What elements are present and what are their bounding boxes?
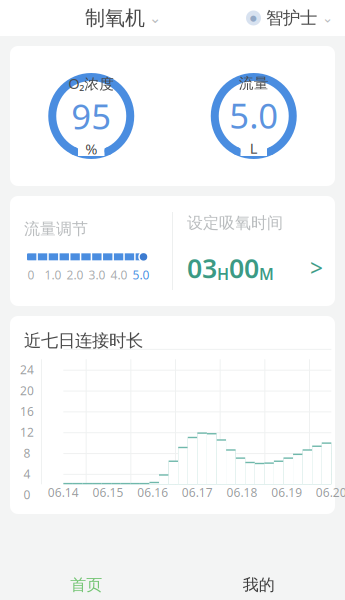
- staticText: 06.14: [48, 484, 79, 500]
- staticText: 0: [23, 487, 30, 503]
- staticText: 4.0: [110, 267, 127, 283]
- staticText: 5.0: [229, 92, 278, 138]
- staticText: 近七日连接时长: [24, 330, 143, 351]
- staticText: H: [217, 263, 229, 284]
- staticText: 06.19: [271, 484, 302, 500]
- button[interactable]: 制氧机: [85, 6, 161, 30]
- staticText: L: [250, 138, 258, 158]
- staticText: M: [259, 263, 274, 284]
- staticText: 首页: [70, 575, 102, 595]
- button[interactable]: 我的: [172, 570, 345, 600]
- staticText: ⌄: [322, 10, 333, 25]
- staticText: 流量: [239, 74, 269, 92]
- staticText: O₂浓度: [68, 73, 114, 93]
- staticText: 06.16: [137, 484, 168, 500]
- button[interactable]: 设定吸氧时间: [173, 199, 335, 303]
- staticText: 我的: [243, 575, 275, 595]
- staticText: 4: [23, 466, 30, 482]
- staticText: 1.0: [44, 267, 61, 283]
- staticText: 24: [20, 362, 34, 378]
- staticText: 06.20: [316, 484, 345, 500]
- staticText: 3.0: [88, 267, 105, 283]
- staticText: 制氧机: [85, 6, 145, 30]
- button[interactable]: ●: [246, 7, 333, 29]
- staticText: 流量调节: [24, 219, 88, 239]
- staticText: 0: [27, 267, 34, 283]
- staticText: 95: [71, 93, 111, 139]
- staticText: 5.0: [132, 267, 149, 283]
- staticText: 06.15: [92, 484, 123, 500]
- staticText: 16: [20, 403, 34, 419]
- staticText: >: [310, 253, 323, 283]
- staticText: 2.0: [66, 267, 83, 283]
- staticText: 06.18: [226, 484, 257, 500]
- staticText: 12: [20, 424, 34, 440]
- staticText: ●: [250, 13, 257, 23]
- button[interactable]: 首页: [0, 570, 172, 600]
- staticText: ⌄: [149, 10, 161, 26]
- staticText: 00: [229, 250, 259, 285]
- staticText: 20: [20, 383, 34, 398]
- staticText: 设定吸氧时间: [187, 213, 283, 233]
- staticText: 03: [187, 250, 217, 285]
- staticText: %: [85, 139, 97, 159]
- staticText: 06.17: [182, 484, 213, 500]
- staticText: 8: [23, 445, 30, 461]
- staticText: 智护士: [266, 7, 317, 29]
